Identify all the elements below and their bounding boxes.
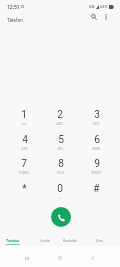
staticText: PQRS: [19, 171, 29, 175]
staticText: Telefon: [7, 18, 23, 24]
button[interactable]: 9: [78, 158, 114, 183]
staticText: 0: [57, 183, 63, 195]
staticText: 5G: [89, 4, 95, 9]
staticText: ∞: [22, 122, 26, 126]
staticText: 2: [57, 109, 63, 121]
button[interactable]: *: [6, 183, 42, 208]
button[interactable]: 5: [42, 134, 78, 159]
button[interactable]: Tastatur: [0, 234, 25, 248]
staticText: Kontakte: [63, 239, 77, 243]
staticText: MNO: [92, 147, 101, 151]
staticText: ABC: [56, 122, 64, 126]
staticText: Letzte: [40, 239, 50, 243]
staticText: 3: [94, 109, 100, 121]
staticText: +: [59, 196, 62, 200]
button[interactable]: 8: [42, 158, 78, 183]
button[interactable]: Kontakte: [57, 234, 83, 248]
button[interactable]: 6: [78, 134, 114, 159]
staticText: *: [22, 183, 27, 195]
staticText: #: [93, 183, 100, 195]
button[interactable]: #: [78, 183, 114, 208]
button[interactable]: 1: [6, 109, 42, 134]
staticText: Tastatur: [6, 239, 19, 243]
staticText: 8: [58, 158, 64, 170]
staticText: 12:51: [7, 4, 20, 10]
button[interactable]: Letzte: [33, 234, 57, 248]
staticText: GHI: [21, 147, 28, 151]
staticText: Orte: [96, 239, 103, 243]
button[interactable]: Home: [50, 250, 70, 266]
button[interactable]: Call: [51, 207, 71, 227]
button[interactable]: 2: [42, 109, 78, 134]
staticText: 6: [94, 134, 100, 146]
staticText: TUV: [57, 171, 64, 175]
button[interactable]: 4: [6, 134, 42, 159]
button[interactable]: Recent apps: [17, 250, 37, 266]
staticText: 4: [22, 134, 28, 146]
button[interactable]: 3: [78, 109, 114, 134]
button[interactable]: Search: [87, 10, 101, 24]
staticText: WXYZ: [91, 171, 102, 175]
button[interactable]: 7: [6, 158, 42, 183]
staticText: 1: [21, 109, 27, 121]
button[interactable]: More options: [99, 10, 113, 24]
staticText: 7: [21, 158, 27, 170]
staticText: DEF: [93, 122, 100, 126]
button[interactable]: Orte: [88, 234, 110, 248]
staticText: JKL: [57, 147, 64, 151]
staticText: 64%: [100, 4, 108, 9]
staticText: 9: [94, 158, 100, 170]
button[interactable]: 0: [42, 183, 78, 208]
staticText: 5: [58, 134, 64, 146]
button[interactable]: Back: [82, 250, 102, 266]
